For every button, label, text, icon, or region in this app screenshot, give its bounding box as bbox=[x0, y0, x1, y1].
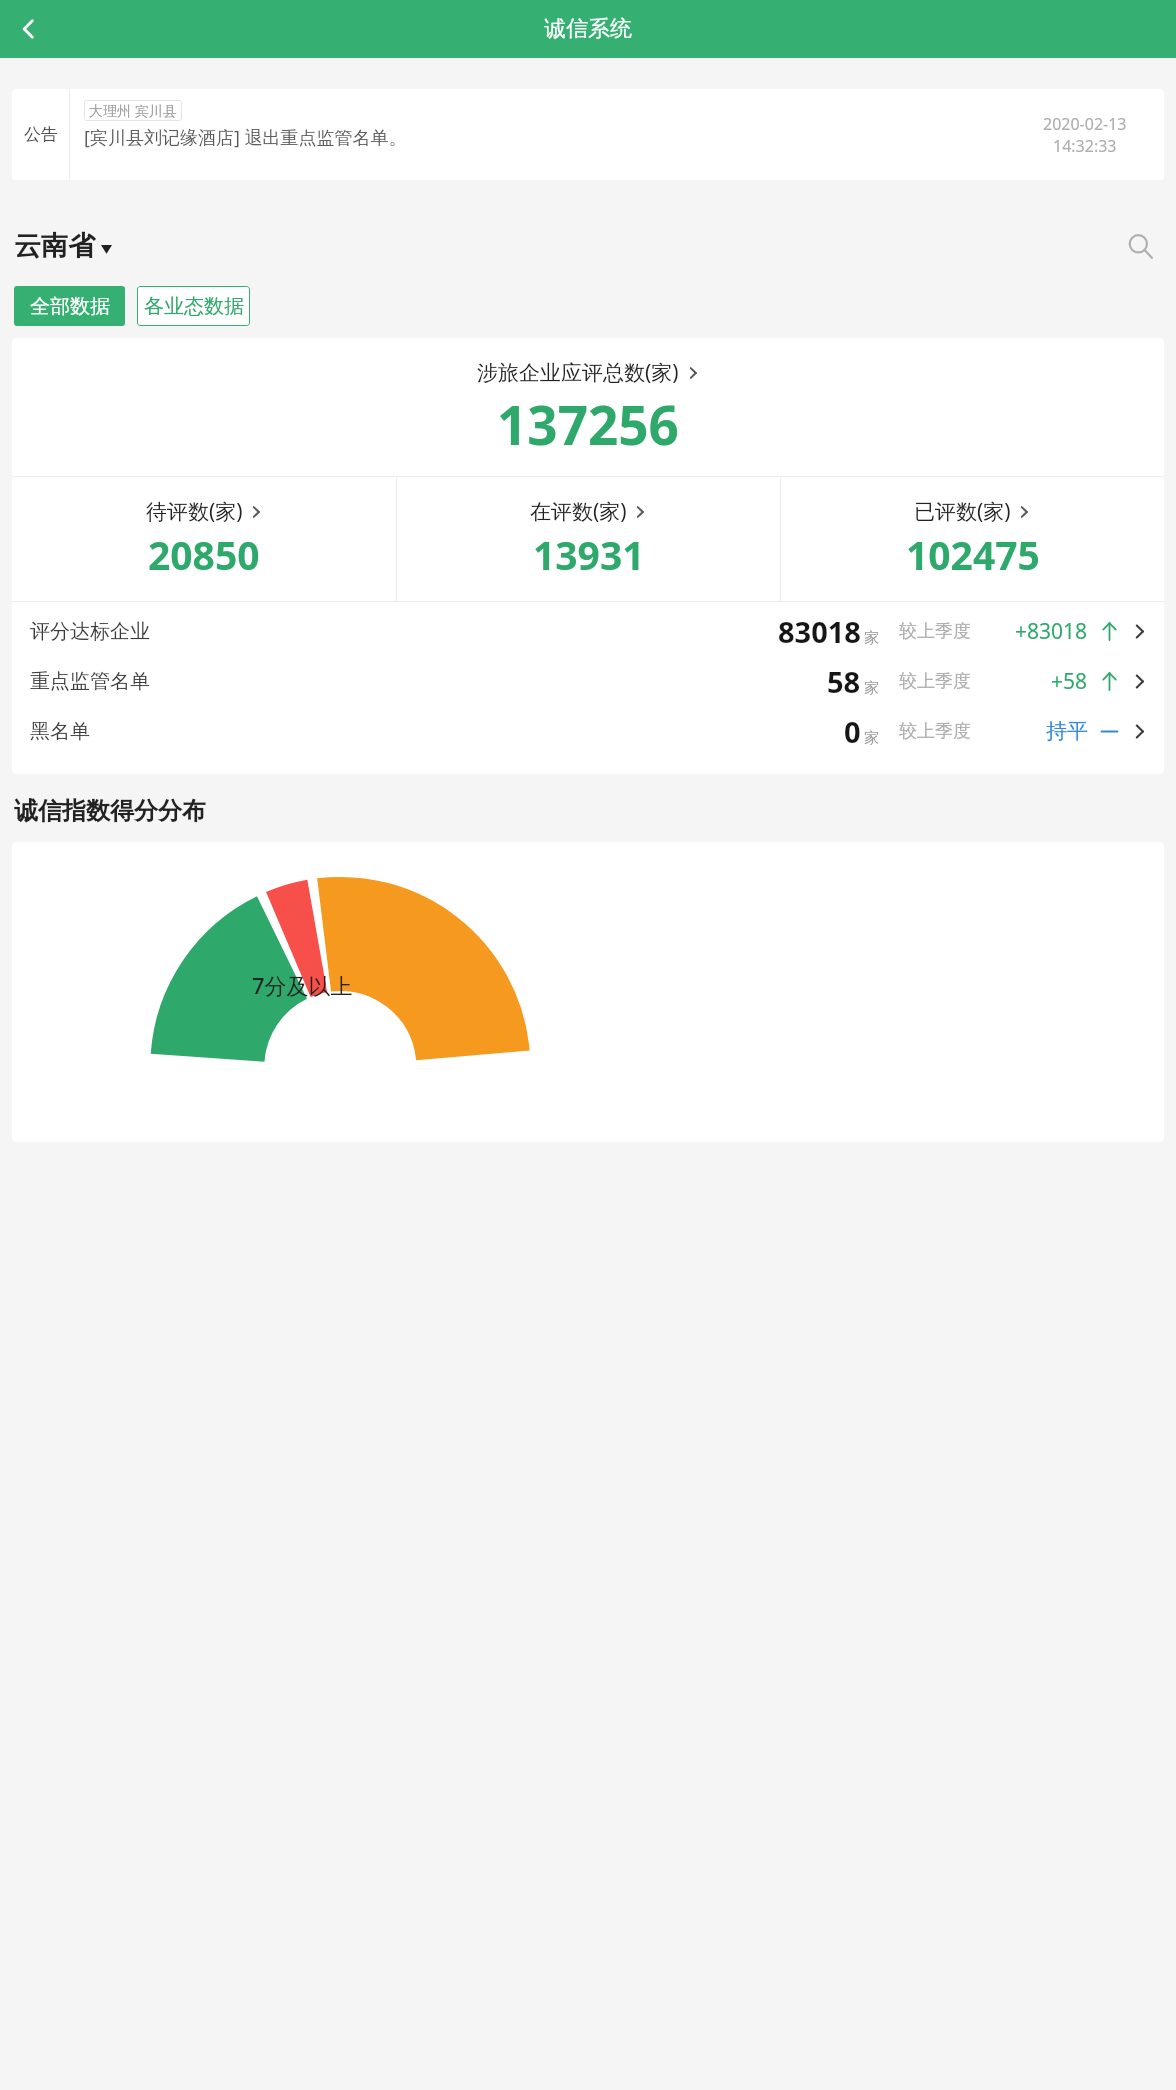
button[interactable]: 评分达标企业 bbox=[12, 606, 1164, 656]
staticText: 较上季度 bbox=[899, 720, 971, 743]
staticText: [宾川县刘记缘酒店] 退出重点监管名单。 bbox=[84, 125, 407, 150]
staticText: 58 bbox=[827, 662, 861, 701]
button[interactable]: Back bbox=[6, 6, 52, 52]
button[interactable]: 涉旅企业应评总数(家) bbox=[12, 338, 1164, 476]
button[interactable]: 重点监管名单 bbox=[12, 656, 1164, 706]
staticText: 家 bbox=[864, 729, 879, 748]
staticText: 13931 bbox=[533, 528, 645, 581]
staticText: 83018 bbox=[778, 612, 861, 651]
staticText: 14:32:33 bbox=[1053, 135, 1117, 157]
staticText: 家 bbox=[864, 629, 879, 648]
staticText: 黑名单 bbox=[30, 719, 90, 744]
button[interactable]: 云南省 bbox=[14, 229, 112, 263]
button[interactable]: 在评数(家) bbox=[397, 477, 780, 601]
staticText: 20850 bbox=[148, 528, 260, 581]
staticText: 待评数(家) bbox=[146, 497, 243, 526]
staticText: 诚信指数得分分布 bbox=[14, 796, 206, 826]
staticText: 大理州 宾川县 bbox=[89, 101, 177, 120]
staticText: 102475 bbox=[906, 528, 1040, 581]
button[interactable]: 全部数据 bbox=[14, 286, 125, 326]
staticText: +83018 bbox=[1015, 617, 1088, 646]
staticText: 重点监管名单 bbox=[30, 669, 150, 694]
staticText: 家 bbox=[864, 679, 879, 698]
staticText: 全部数据 bbox=[30, 294, 110, 319]
staticText: +58 bbox=[1051, 667, 1088, 696]
staticText: 较上季度 bbox=[899, 620, 971, 643]
button[interactable]: 黑名单 bbox=[12, 706, 1164, 756]
staticText: 较上季度 bbox=[899, 670, 971, 693]
staticText: 2020-02-13 bbox=[1043, 113, 1127, 135]
staticText: 7分及以上 bbox=[252, 970, 353, 1000]
button[interactable]: 公告 bbox=[12, 89, 1164, 180]
staticText: 诚信系统 bbox=[544, 15, 632, 43]
staticText: 涉旅企业应评总数(家) bbox=[477, 358, 679, 387]
staticText: 各业态数据 bbox=[144, 294, 244, 319]
button[interactable]: 已评数(家) bbox=[781, 477, 1164, 601]
staticText: 云南省 bbox=[14, 229, 95, 263]
staticText: 137256 bbox=[497, 388, 679, 460]
staticText: 评分达标企业 bbox=[30, 619, 150, 644]
staticText: 已评数(家) bbox=[914, 497, 1011, 526]
staticText: 在评数(家) bbox=[530, 497, 627, 526]
staticText: 持平 bbox=[1046, 718, 1088, 744]
button[interactable]: 待评数(家) bbox=[12, 477, 396, 601]
staticText: 公告 bbox=[24, 124, 58, 145]
staticText: 0 bbox=[844, 712, 861, 751]
button[interactable]: 各业态数据 bbox=[137, 286, 250, 326]
button[interactable]: Search bbox=[1118, 224, 1162, 268]
